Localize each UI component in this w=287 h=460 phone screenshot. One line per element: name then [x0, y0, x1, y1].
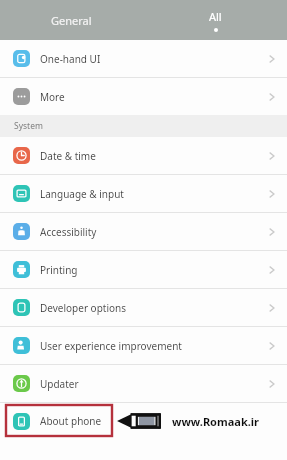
button[interactable]: Printing	[0, 251, 287, 288]
staticText: General	[51, 13, 92, 28]
button[interactable]: Accessibility	[0, 213, 287, 250]
staticText: Printing	[40, 263, 78, 277]
staticText: Updater	[40, 377, 79, 391]
staticText: Language & input	[40, 187, 124, 201]
staticText: Developer options	[40, 301, 127, 315]
button[interactable]: Developer options	[0, 289, 287, 326]
button[interactable]: Language & input	[0, 175, 287, 212]
staticText: All	[209, 9, 222, 24]
button[interactable]: All	[143, 0, 287, 40]
staticText: System	[14, 120, 43, 132]
staticText: www.Romaak.ir	[172, 414, 260, 429]
button[interactable]: Updater	[0, 365, 287, 402]
button[interactable]: General	[0, 0, 143, 40]
button[interactable]: User experience improvement	[0, 327, 287, 364]
staticText: More	[40, 90, 65, 104]
staticText: One-hand UI	[40, 52, 101, 66]
staticText: User experience improvement	[40, 339, 182, 353]
button[interactable]: About phone	[0, 403, 287, 439]
button[interactable]: One-hand UI	[0, 40, 287, 77]
staticText: Date & time	[40, 149, 96, 163]
staticText: About phone	[40, 414, 102, 428]
button[interactable]: More	[0, 78, 287, 115]
staticText: Accessibility	[40, 225, 97, 239]
button[interactable]: Date & time	[0, 137, 287, 174]
